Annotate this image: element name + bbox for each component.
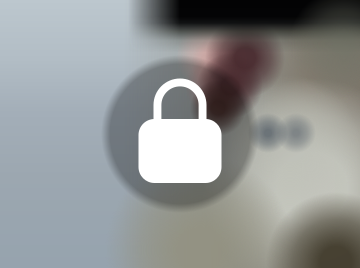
button[interactable]: Locked [0,0,360,268]
